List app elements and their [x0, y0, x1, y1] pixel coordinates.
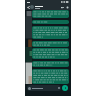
button[interactable] [32, 69, 69, 84]
button[interactable] [32, 10, 69, 18]
button[interactable] [32, 48, 69, 59]
button[interactable] [32, 41, 69, 47]
button[interactable]: Back [26, 5, 30, 9]
button[interactable] [32, 26, 69, 39]
button[interactable]: Voice call [65, 5, 69, 9]
button[interactable] [32, 20, 69, 24]
button[interactable] [27, 85, 61, 91]
button[interactable] [32, 61, 69, 67]
button[interactable]: Video call [60, 5, 64, 9]
button[interactable]: Voice message [62, 85, 68, 91]
